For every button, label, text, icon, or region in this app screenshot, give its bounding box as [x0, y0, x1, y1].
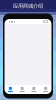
staticText: 应用商城介绍 — [13, 3, 43, 9]
button[interactable]: Tab — [4, 87, 16, 92]
staticText: 9:41 — [8, 20, 15, 23]
button[interactable]: Tab — [16, 87, 28, 92]
button[interactable]: Tab — [40, 87, 52, 92]
button[interactable]: Tab — [28, 87, 40, 92]
